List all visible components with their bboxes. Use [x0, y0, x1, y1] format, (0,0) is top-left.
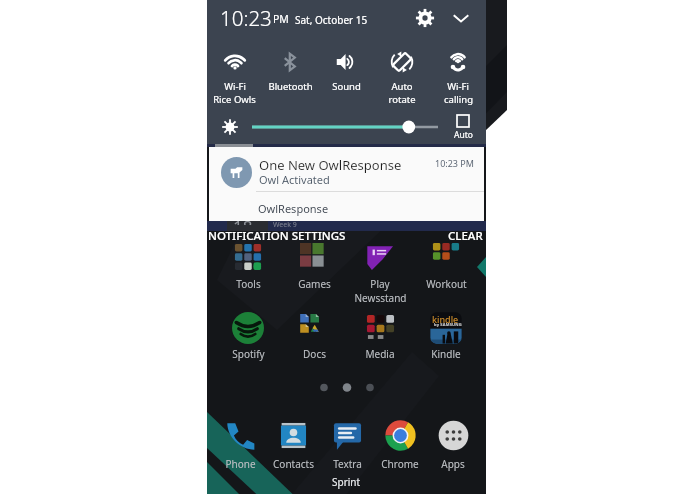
staticText: Chrome [381, 457, 419, 471]
staticText: rotate [388, 93, 416, 106]
staticText: Week 9 [273, 220, 297, 230]
button[interactable]: Textra [315, 417, 379, 483]
button[interactable]: Auto brightness [447, 115, 479, 141]
staticText: Media [365, 347, 395, 361]
staticText: Docs [303, 347, 326, 361]
staticText: OwlResponse [258, 201, 329, 216]
staticText: Owl Activated [259, 172, 330, 187]
button[interactable]: Contacts [261, 417, 325, 483]
button[interactable]: Collapse [450, 7, 472, 29]
staticText: Auto [391, 80, 413, 93]
button[interactable]: Kindle [414, 310, 478, 373]
staticText: calling [444, 93, 473, 106]
staticText: Contacts [273, 457, 314, 471]
button[interactable]: Media [348, 310, 412, 373]
button[interactable]: Workout [414, 238, 478, 303]
staticText: Sound [332, 80, 361, 93]
staticText: Wi-Fi [447, 80, 469, 93]
staticText: 10:23 PM [435, 157, 474, 169]
button[interactable]: Bluetooth [262, 38, 318, 93]
button[interactable]: Tools [216, 239, 280, 303]
staticText: Phone [225, 457, 256, 471]
staticText: by SAMSUNG [434, 322, 462, 327]
button[interactable]: OwlResponse [209, 191, 484, 221]
button[interactable]: Settings [414, 7, 436, 29]
button[interactable]: Apps [421, 417, 485, 483]
staticText: 10:23 [220, 4, 272, 32]
button[interactable]: CLEAR [448, 228, 483, 244]
button[interactable]: Spotify [216, 310, 280, 373]
staticText: Play [370, 277, 390, 291]
staticText: Games [298, 277, 331, 291]
staticText: Sprint [332, 475, 361, 489]
button[interactable]: Play [348, 239, 412, 303]
button[interactable]: Wi-Ficalling [430, 38, 486, 106]
button[interactable]: Phone [208, 417, 272, 483]
staticText: kindle [432, 313, 459, 325]
staticText: PM [273, 12, 289, 26]
staticText: Auto [454, 129, 473, 141]
staticText: Newsstand [354, 291, 407, 305]
staticText: Rice Owls [213, 93, 256, 106]
button[interactable]: Sound [318, 38, 374, 93]
button[interactable]: Docs [282, 310, 346, 373]
button[interactable] [209, 147, 484, 221]
staticText: Workout [426, 277, 467, 291]
button[interactable]: Chrome [368, 417, 432, 483]
button[interactable]: Autorotate [374, 38, 430, 106]
staticText: Kindle [431, 347, 461, 361]
staticText: Wi-Fi [224, 80, 246, 93]
staticText: NOTIFICATION SETTINGS [208, 228, 346, 244]
staticText: One New OwlResponse [259, 156, 402, 174]
button[interactable]: Wi-FiRice Owls [207, 38, 262, 106]
staticText: CLEAR [448, 228, 483, 244]
staticText: Sat, October 15 [295, 13, 368, 27]
button[interactable]: Games [282, 239, 346, 303]
staticText: 18 [233, 215, 253, 225]
staticText: Textra [333, 457, 362, 471]
staticText: Spotify [232, 347, 265, 361]
button[interactable]: NOTIFICATION SETTINGS [208, 228, 346, 244]
staticText: Tools [236, 277, 261, 291]
staticText: Apps [441, 457, 465, 471]
staticText: Bluetooth [268, 80, 313, 93]
